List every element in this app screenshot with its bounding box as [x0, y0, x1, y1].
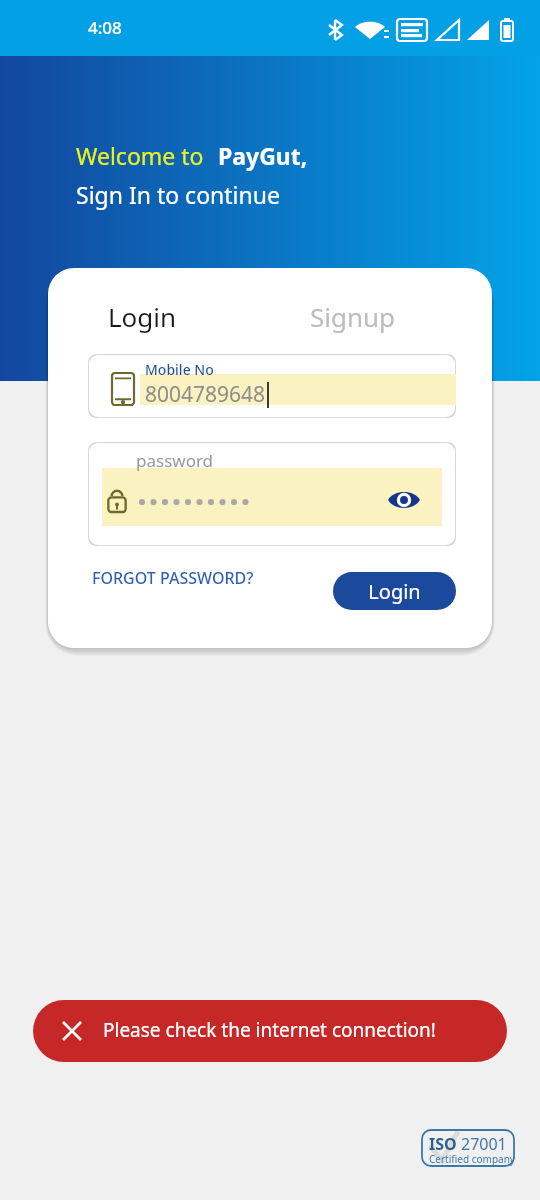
staticText: Login	[108, 299, 177, 334]
button[interactable]: Login	[333, 572, 456, 610]
staticText: PayGut,	[218, 140, 308, 171]
button[interactable]: Signup	[310, 290, 470, 342]
button[interactable]: FORGOT PASSWORD?	[84, 556, 300, 600]
button[interactable]: Mobile No	[88, 354, 456, 418]
staticText: 8004789648	[145, 380, 266, 409]
staticText: Welcome to	[76, 140, 204, 171]
staticText: 4:08	[88, 16, 122, 39]
staticText: Sign In to continue	[76, 179, 280, 210]
staticText: Login	[368, 578, 421, 605]
staticText: Signup	[310, 299, 396, 334]
staticText: Please check the internet connection!	[103, 1017, 436, 1043]
staticText: Mobile No	[145, 360, 214, 379]
button[interactable]: Please check the internet connection!	[33, 1000, 507, 1062]
staticText: FORGOT PASSWORD?	[92, 567, 254, 589]
button[interactable]: Show password	[380, 484, 428, 516]
button[interactable]: password	[88, 442, 456, 546]
staticText: password	[136, 449, 214, 472]
staticText: ISO	[429, 1133, 457, 1155]
staticText: Certified company	[429, 1152, 515, 1166]
staticText: 27001	[461, 1133, 507, 1155]
button[interactable]: Login	[108, 290, 248, 342]
